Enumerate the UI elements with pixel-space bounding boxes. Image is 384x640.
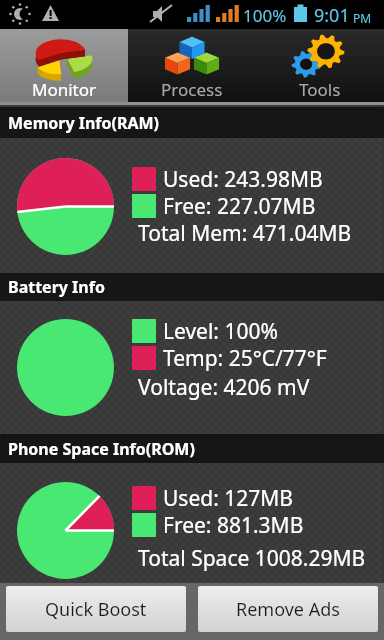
staticText: Monitor [32,78,97,101]
staticText: Process [161,78,223,101]
staticText: Memory Info(RAM) [8,112,160,134]
staticText: 9:01 [314,3,350,28]
staticText: Battery Info [8,276,105,298]
staticText: Quick Boost [45,597,147,622]
staticText: Free: 881.3MB [163,511,304,538]
staticText: Temp: 25°C/77°F [163,344,327,371]
staticText: Used: 243.98MB [163,165,323,192]
staticText: Remove Ads [236,597,340,622]
button[interactable]: Remove Ads [198,586,378,632]
staticText: Total Mem: 471.04MB [138,219,352,248]
staticText: 100% [243,4,287,27]
button[interactable]: Process [128,29,256,102]
staticText: Tools [299,78,341,101]
button[interactable]: Monitor [0,29,128,102]
button[interactable]: Quick Boost [6,586,186,632]
staticText: Voltage: 4206 mV [138,373,310,402]
staticText: Total Space 1008.29MB [138,544,366,573]
staticText: Level: 100% [163,317,278,344]
staticText: Used: 127MB [163,484,293,511]
button[interactable]: Tools [256,29,384,102]
staticText: Free: 227.07MB [163,192,316,219]
staticText: PM [353,10,372,26]
staticText: Phone Space Info(ROM) [8,438,195,460]
